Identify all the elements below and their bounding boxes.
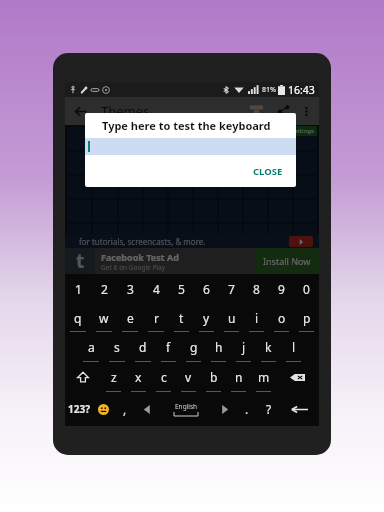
button[interactable]: n bbox=[226, 362, 251, 392]
staticText: 4 bbox=[153, 281, 160, 297]
button[interactable]: 5 bbox=[169, 274, 194, 303]
button[interactable]: Move cursor left bbox=[136, 392, 158, 426]
button[interactable]: , bbox=[114, 392, 136, 426]
button[interactable]: More options bbox=[296, 101, 316, 121]
staticText: s bbox=[114, 339, 120, 355]
button[interactable]: 6 bbox=[194, 274, 219, 303]
button[interactable]: i bbox=[244, 303, 269, 332]
button[interactable]: q bbox=[65, 303, 91, 332]
button[interactable]: w bbox=[91, 303, 117, 332]
button[interactable]: t bbox=[169, 303, 194, 332]
staticText: b bbox=[210, 369, 218, 385]
staticText: 6 bbox=[203, 281, 210, 297]
staticText: t bbox=[76, 248, 85, 274]
button[interactable]: y bbox=[194, 303, 219, 332]
staticText: 0 bbox=[303, 281, 310, 297]
staticText: k bbox=[265, 339, 272, 355]
staticText: Get it on Google Play bbox=[101, 263, 165, 272]
button[interactable]: 8 bbox=[244, 274, 269, 303]
staticText: 123? bbox=[68, 402, 90, 416]
staticText: ? bbox=[266, 401, 272, 417]
button[interactable]: 4 bbox=[143, 274, 169, 303]
staticText: Settings bbox=[291, 127, 314, 135]
button[interactable]: d bbox=[130, 332, 156, 362]
button[interactable]: Move cursor right bbox=[214, 392, 236, 426]
staticText: x bbox=[135, 369, 142, 385]
button[interactable]: m bbox=[251, 362, 276, 392]
button[interactable]: r bbox=[143, 303, 169, 332]
button[interactable]: a bbox=[78, 332, 104, 362]
button[interactable]: c bbox=[151, 362, 176, 392]
button[interactable]: ? bbox=[258, 392, 280, 426]
button[interactable]: . bbox=[236, 392, 258, 426]
staticText: f bbox=[166, 339, 171, 355]
button[interactable]: g bbox=[181, 332, 206, 362]
staticText: t bbox=[179, 310, 184, 326]
staticText: i bbox=[255, 310, 259, 326]
staticText: z bbox=[111, 369, 117, 385]
staticText: w bbox=[99, 310, 109, 326]
staticText: Facebook Test Ad bbox=[101, 251, 179, 263]
button[interactable]: Test keyboard bbox=[242, 97, 270, 125]
button[interactable]: 1 bbox=[65, 274, 91, 303]
button[interactable]: u bbox=[219, 303, 244, 332]
staticText: j bbox=[242, 339, 246, 355]
staticText: English bbox=[175, 402, 198, 411]
button[interactable]: 2 bbox=[91, 274, 117, 303]
button[interactable]: Space bbox=[158, 392, 214, 426]
button[interactable]: e bbox=[117, 303, 143, 332]
staticText: c bbox=[161, 369, 167, 385]
staticText: q bbox=[74, 310, 82, 326]
staticText: 1 bbox=[75, 281, 82, 297]
button[interactable]: 7 bbox=[219, 274, 244, 303]
staticText: a bbox=[88, 339, 95, 355]
button[interactable]: 123? bbox=[65, 392, 92, 426]
staticText: h bbox=[215, 339, 223, 355]
button[interactable]: j bbox=[231, 332, 256, 362]
button[interactable]: z bbox=[101, 362, 126, 392]
staticText: d bbox=[139, 339, 147, 355]
button[interactable]: Backspace bbox=[276, 362, 319, 392]
staticText: 2 bbox=[101, 281, 108, 297]
staticText: 7 bbox=[228, 281, 235, 297]
button[interactable]: f bbox=[156, 332, 181, 362]
button[interactable]: Shift bbox=[65, 362, 101, 392]
button[interactable]: Share bbox=[270, 98, 296, 124]
staticText: e bbox=[127, 310, 134, 326]
button[interactable]: CLOSE bbox=[240, 158, 296, 185]
staticText: 8 bbox=[253, 281, 260, 297]
staticText: o bbox=[278, 310, 286, 326]
staticText: p bbox=[303, 310, 311, 326]
staticText: 5 bbox=[178, 281, 185, 297]
button[interactable]: 0 bbox=[294, 274, 319, 303]
staticText: Type here to test the keyboard bbox=[102, 118, 271, 133]
button[interactable]: s bbox=[104, 332, 130, 362]
staticText: u bbox=[228, 310, 236, 326]
staticText: . bbox=[245, 401, 249, 417]
button[interactable]: k bbox=[256, 332, 281, 362]
button[interactable]: 3 bbox=[117, 274, 143, 303]
button[interactable]: Enter bbox=[280, 392, 319, 426]
button[interactable]: h bbox=[206, 332, 231, 362]
button[interactable]: l bbox=[281, 332, 306, 362]
staticText: for tutorials, screencasts, & more. bbox=[79, 236, 206, 247]
button[interactable]: Emoji bbox=[92, 392, 114, 426]
staticText: Themes bbox=[101, 102, 150, 120]
staticText: , bbox=[123, 401, 127, 417]
button[interactable]: Back bbox=[65, 97, 95, 125]
staticText: Install Now bbox=[263, 255, 311, 267]
button[interactable]: v bbox=[176, 362, 201, 392]
staticText: m bbox=[258, 369, 270, 385]
button[interactable]: Install Now bbox=[255, 248, 319, 274]
button[interactable]: o bbox=[269, 303, 294, 332]
staticText: 81% bbox=[262, 85, 276, 95]
button[interactable]: b bbox=[201, 362, 226, 392]
button[interactable]: x bbox=[126, 362, 151, 392]
staticText: l bbox=[292, 339, 296, 355]
staticText: y bbox=[203, 310, 210, 326]
staticText: 9 bbox=[278, 281, 285, 297]
button[interactable]: 9 bbox=[269, 274, 294, 303]
staticText: 3 bbox=[127, 281, 134, 297]
button[interactable]: p bbox=[294, 303, 319, 332]
staticText: g bbox=[190, 339, 198, 355]
